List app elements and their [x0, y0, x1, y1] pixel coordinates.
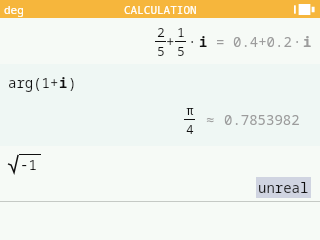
other: Battery [294, 4, 315, 15]
staticText: unreal [258, 178, 309, 197]
staticText: = [216, 32, 225, 51]
staticText: 2 [157, 23, 165, 41]
staticText: 5 [157, 42, 165, 60]
staticText: · [293, 32, 302, 51]
staticText: i [303, 32, 312, 51]
staticText: CALCULATION [124, 2, 197, 17]
staticText: deg [4, 2, 24, 17]
button[interactable]: 2 [0, 18, 320, 64]
staticText: ) [68, 73, 77, 92]
staticText: ≈ [206, 110, 215, 129]
staticText: 0.7853982 [224, 110, 300, 129]
staticText: -1 [20, 155, 37, 174]
staticText: 0.4+0.2 [233, 32, 292, 51]
staticText: 1 [177, 23, 185, 41]
staticText: i [199, 32, 208, 51]
staticText: i [59, 73, 68, 92]
staticText: π [186, 101, 194, 119]
staticText: · [188, 32, 197, 51]
staticText: arg(1+ [8, 73, 59, 92]
staticText: 4 [186, 120, 194, 138]
staticText: + [166, 32, 175, 51]
staticText: 5 [177, 42, 185, 60]
button[interactable]: arg(1+ [0, 64, 320, 146]
button[interactable]: -1 [0, 146, 320, 201]
